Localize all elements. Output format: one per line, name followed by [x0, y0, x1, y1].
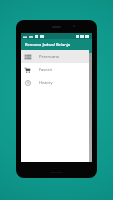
- staticText: Rencana Jadwal Belanja: [25, 42, 71, 47]
- other: Planner: [25, 54, 31, 60]
- staticText: History: [39, 80, 53, 85]
- button[interactable]: History: [21, 76, 92, 89]
- staticText: Favorit: [39, 67, 52, 72]
- button[interactable]: Rencana Jadwal Belanja: [21, 39, 92, 50]
- staticText: Perencana: [39, 54, 59, 59]
- other: History: [25, 80, 31, 86]
- other: Favorites: [25, 67, 31, 73]
- button[interactable]: Favorites: [21, 63, 92, 76]
- button[interactable]: Planner: [21, 50, 92, 63]
